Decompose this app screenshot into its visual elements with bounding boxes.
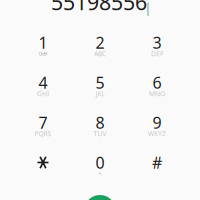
staticText: JKL — [95, 89, 104, 98]
staticText: 7 — [38, 112, 47, 133]
staticText: WXYZ — [148, 129, 166, 138]
button[interactable] — [14, 146, 71, 186]
staticText: TUV — [93, 129, 106, 138]
staticText: 3 — [152, 32, 161, 53]
staticText: GHI — [37, 89, 49, 98]
staticText: MNO — [149, 89, 165, 98]
staticText: 2 — [95, 32, 104, 53]
staticText: 6 — [152, 72, 161, 93]
staticText: 55198556 — [51, 0, 147, 16]
button[interactable]: 0 — [71, 146, 128, 186]
button[interactable]: 3 — [128, 26, 185, 66]
button[interactable]: Call — [84, 195, 116, 200]
button[interactable]: 1 — [14, 26, 71, 66]
button[interactable]: 8 — [71, 106, 128, 146]
staticText: 4 — [38, 72, 47, 93]
staticText: 5 — [95, 72, 104, 93]
staticText: ABC — [94, 49, 106, 58]
button[interactable]: # — [128, 146, 185, 186]
button[interactable]: 5 — [71, 66, 128, 106]
button[interactable]: 9 — [128, 106, 185, 146]
staticText: PQRS — [34, 129, 51, 138]
staticText: 9 — [152, 112, 161, 133]
button[interactable]: 2 — [71, 26, 128, 66]
staticText: + — [98, 169, 102, 178]
staticText: DEF — [151, 49, 163, 58]
staticText: 8 — [95, 112, 104, 133]
button[interactable]: 4 — [14, 66, 71, 106]
button[interactable]: 6 — [128, 66, 185, 106]
button[interactable]: 7 — [14, 106, 71, 146]
staticText: 0 — [95, 152, 104, 173]
staticText: # — [152, 152, 162, 173]
staticText: 1 — [38, 32, 47, 53]
